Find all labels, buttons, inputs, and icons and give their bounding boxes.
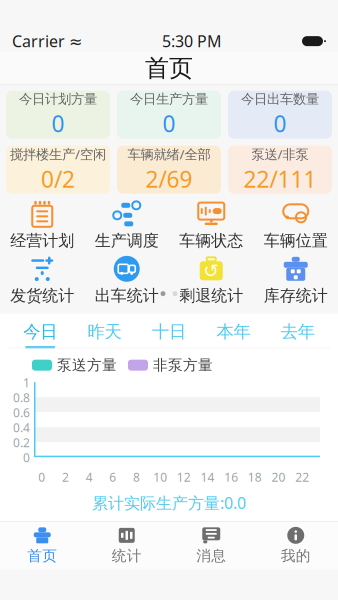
button[interactable]: 昨天 bbox=[72, 322, 137, 348]
staticText: 车辆状态 bbox=[179, 231, 243, 250]
staticText: 20 bbox=[271, 469, 285, 485]
button[interactable]: 生产调度 bbox=[84, 198, 169, 253]
button[interactable]: 经营计划 bbox=[0, 198, 84, 253]
button[interactable]: 消息 bbox=[169, 522, 253, 570]
staticText: 车辆位置 bbox=[264, 231, 328, 250]
button[interactable]: 车辆位置 bbox=[253, 198, 338, 253]
staticText: 非泵方量 bbox=[153, 356, 213, 374]
staticText: 0 bbox=[38, 469, 45, 485]
staticText: 车辆就绪/全部 bbox=[127, 145, 210, 163]
button[interactable]: 我的 bbox=[253, 522, 338, 570]
staticText: 0 bbox=[273, 108, 286, 138]
button[interactable]: 今日 bbox=[8, 322, 72, 348]
staticText: 0 bbox=[51, 108, 64, 138]
button[interactable]: 十日 bbox=[137, 322, 201, 348]
button[interactable]: 首页 bbox=[0, 522, 84, 570]
button[interactable]: 统计 bbox=[84, 522, 169, 570]
staticText: 今日计划方量 bbox=[19, 91, 97, 107]
staticText: 剩退统计 bbox=[179, 286, 243, 305]
button[interactable]: 去年 bbox=[266, 322, 330, 348]
button[interactable]: 首页 bbox=[0, 52, 338, 84]
button[interactable]: 今日生产方量 bbox=[117, 91, 221, 139]
staticText: 1 bbox=[23, 375, 30, 391]
staticText: ↺ bbox=[203, 260, 219, 281]
staticText: 本年 bbox=[216, 321, 250, 342]
staticText: 泵送方量 bbox=[57, 356, 117, 374]
staticText: 经营计划 bbox=[10, 231, 74, 250]
staticText: 首页 bbox=[145, 53, 193, 83]
button[interactable]: 本年 bbox=[201, 322, 266, 348]
staticText: 发货统计 bbox=[10, 286, 74, 305]
button[interactable]: 泵送/非泵 bbox=[228, 146, 332, 194]
staticText: 0.6 bbox=[13, 405, 30, 421]
staticText: 我的 bbox=[281, 547, 311, 565]
staticText: 0.4 bbox=[13, 420, 30, 436]
button[interactable]: 今日出车数量 bbox=[228, 91, 332, 139]
staticText: 生产调度 bbox=[95, 231, 159, 250]
staticText: Carrier ≈ bbox=[12, 30, 82, 52]
staticText: 0 bbox=[162, 108, 175, 138]
staticText: 泵送/非泵 bbox=[251, 145, 308, 163]
staticText: 统计 bbox=[112, 547, 142, 565]
staticText: 搅拌楼生产/空闲 bbox=[10, 145, 106, 163]
staticText: 10 bbox=[153, 469, 167, 485]
staticText: 12 bbox=[177, 469, 191, 485]
staticText: 0 bbox=[23, 450, 30, 466]
button[interactable]: 库存统计 bbox=[253, 253, 338, 308]
button[interactable]: 车辆状态 bbox=[169, 198, 253, 253]
staticText: 2/69 bbox=[145, 164, 192, 194]
staticText: 8 bbox=[133, 469, 140, 485]
button[interactable]: 搅拌楼生产/空闲 bbox=[6, 146, 110, 194]
staticText: 十日 bbox=[152, 321, 186, 342]
staticText: 去年 bbox=[281, 321, 315, 342]
staticText: 出车统计 bbox=[95, 286, 159, 305]
staticText: 库存统计 bbox=[264, 286, 328, 305]
staticText: 首页 bbox=[27, 547, 57, 565]
staticText: 0/2 bbox=[41, 164, 75, 194]
staticText: 14 bbox=[200, 469, 214, 485]
button[interactable]: 车辆就绪/全部 bbox=[117, 146, 221, 194]
staticText: 22/111 bbox=[243, 164, 316, 194]
staticText: 0.2 bbox=[13, 435, 30, 451]
button[interactable]: 今日计划方量 bbox=[6, 91, 110, 139]
staticText: 6 bbox=[109, 469, 116, 485]
staticText: 5:30 PM bbox=[162, 30, 222, 52]
button[interactable]: 出车统计 bbox=[84, 253, 169, 308]
staticText: 今日 bbox=[23, 321, 57, 342]
staticText: 累计实际生产方量:0.0 bbox=[92, 492, 246, 513]
staticText: 4 bbox=[86, 469, 93, 485]
staticText: 16 bbox=[224, 469, 238, 485]
button[interactable]: 发货统计 bbox=[0, 253, 84, 308]
staticText: 2 bbox=[62, 469, 69, 485]
staticText: 0.8 bbox=[13, 390, 30, 406]
staticText: 今日出车数量 bbox=[241, 91, 319, 107]
staticText: 今日生产方量 bbox=[130, 91, 208, 107]
staticText: 22 bbox=[295, 469, 309, 485]
staticText: 消息 bbox=[196, 547, 226, 565]
staticText: 18 bbox=[248, 469, 262, 485]
button[interactable]: ↺ bbox=[169, 253, 253, 308]
staticText: 昨天 bbox=[88, 321, 122, 342]
